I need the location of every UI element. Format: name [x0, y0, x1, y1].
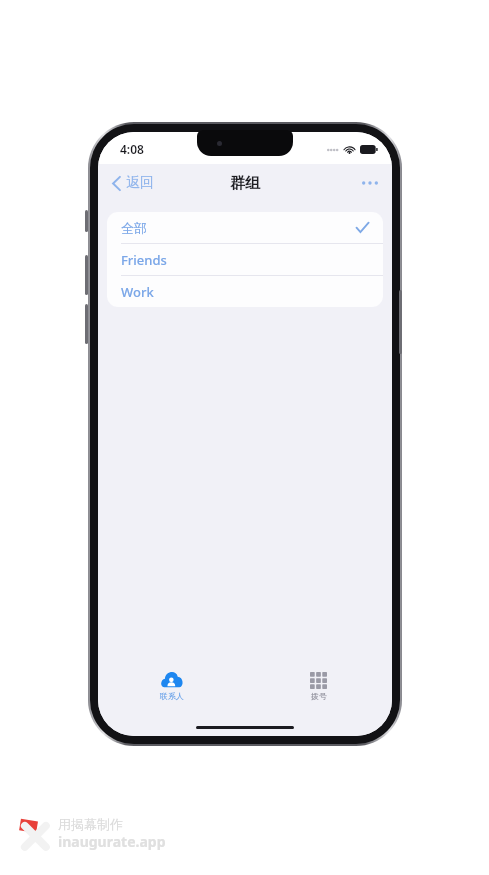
staticText: inaugurate.app	[58, 832, 166, 851]
staticText: 4:08	[120, 141, 144, 157]
staticText: 用揭幕制作	[58, 816, 123, 832]
staticText: 拨号	[311, 691, 327, 701]
button[interactable]: More options	[348, 171, 392, 195]
staticText: Work	[121, 283, 154, 301]
staticText: Friends	[121, 251, 167, 269]
button[interactable]: 拨号	[288, 668, 349, 704]
staticText: 全部	[121, 220, 147, 236]
button[interactable]: 联系人	[138, 668, 206, 704]
staticText: 群组	[230, 174, 260, 193]
button[interactable]: Work	[107, 276, 383, 307]
button[interactable]: Friends	[107, 244, 383, 276]
button[interactable]: 全部	[107, 212, 383, 244]
staticText: 联系人	[160, 691, 184, 701]
button[interactable]: 返回	[98, 168, 164, 198]
staticText: 返回	[126, 174, 154, 192]
